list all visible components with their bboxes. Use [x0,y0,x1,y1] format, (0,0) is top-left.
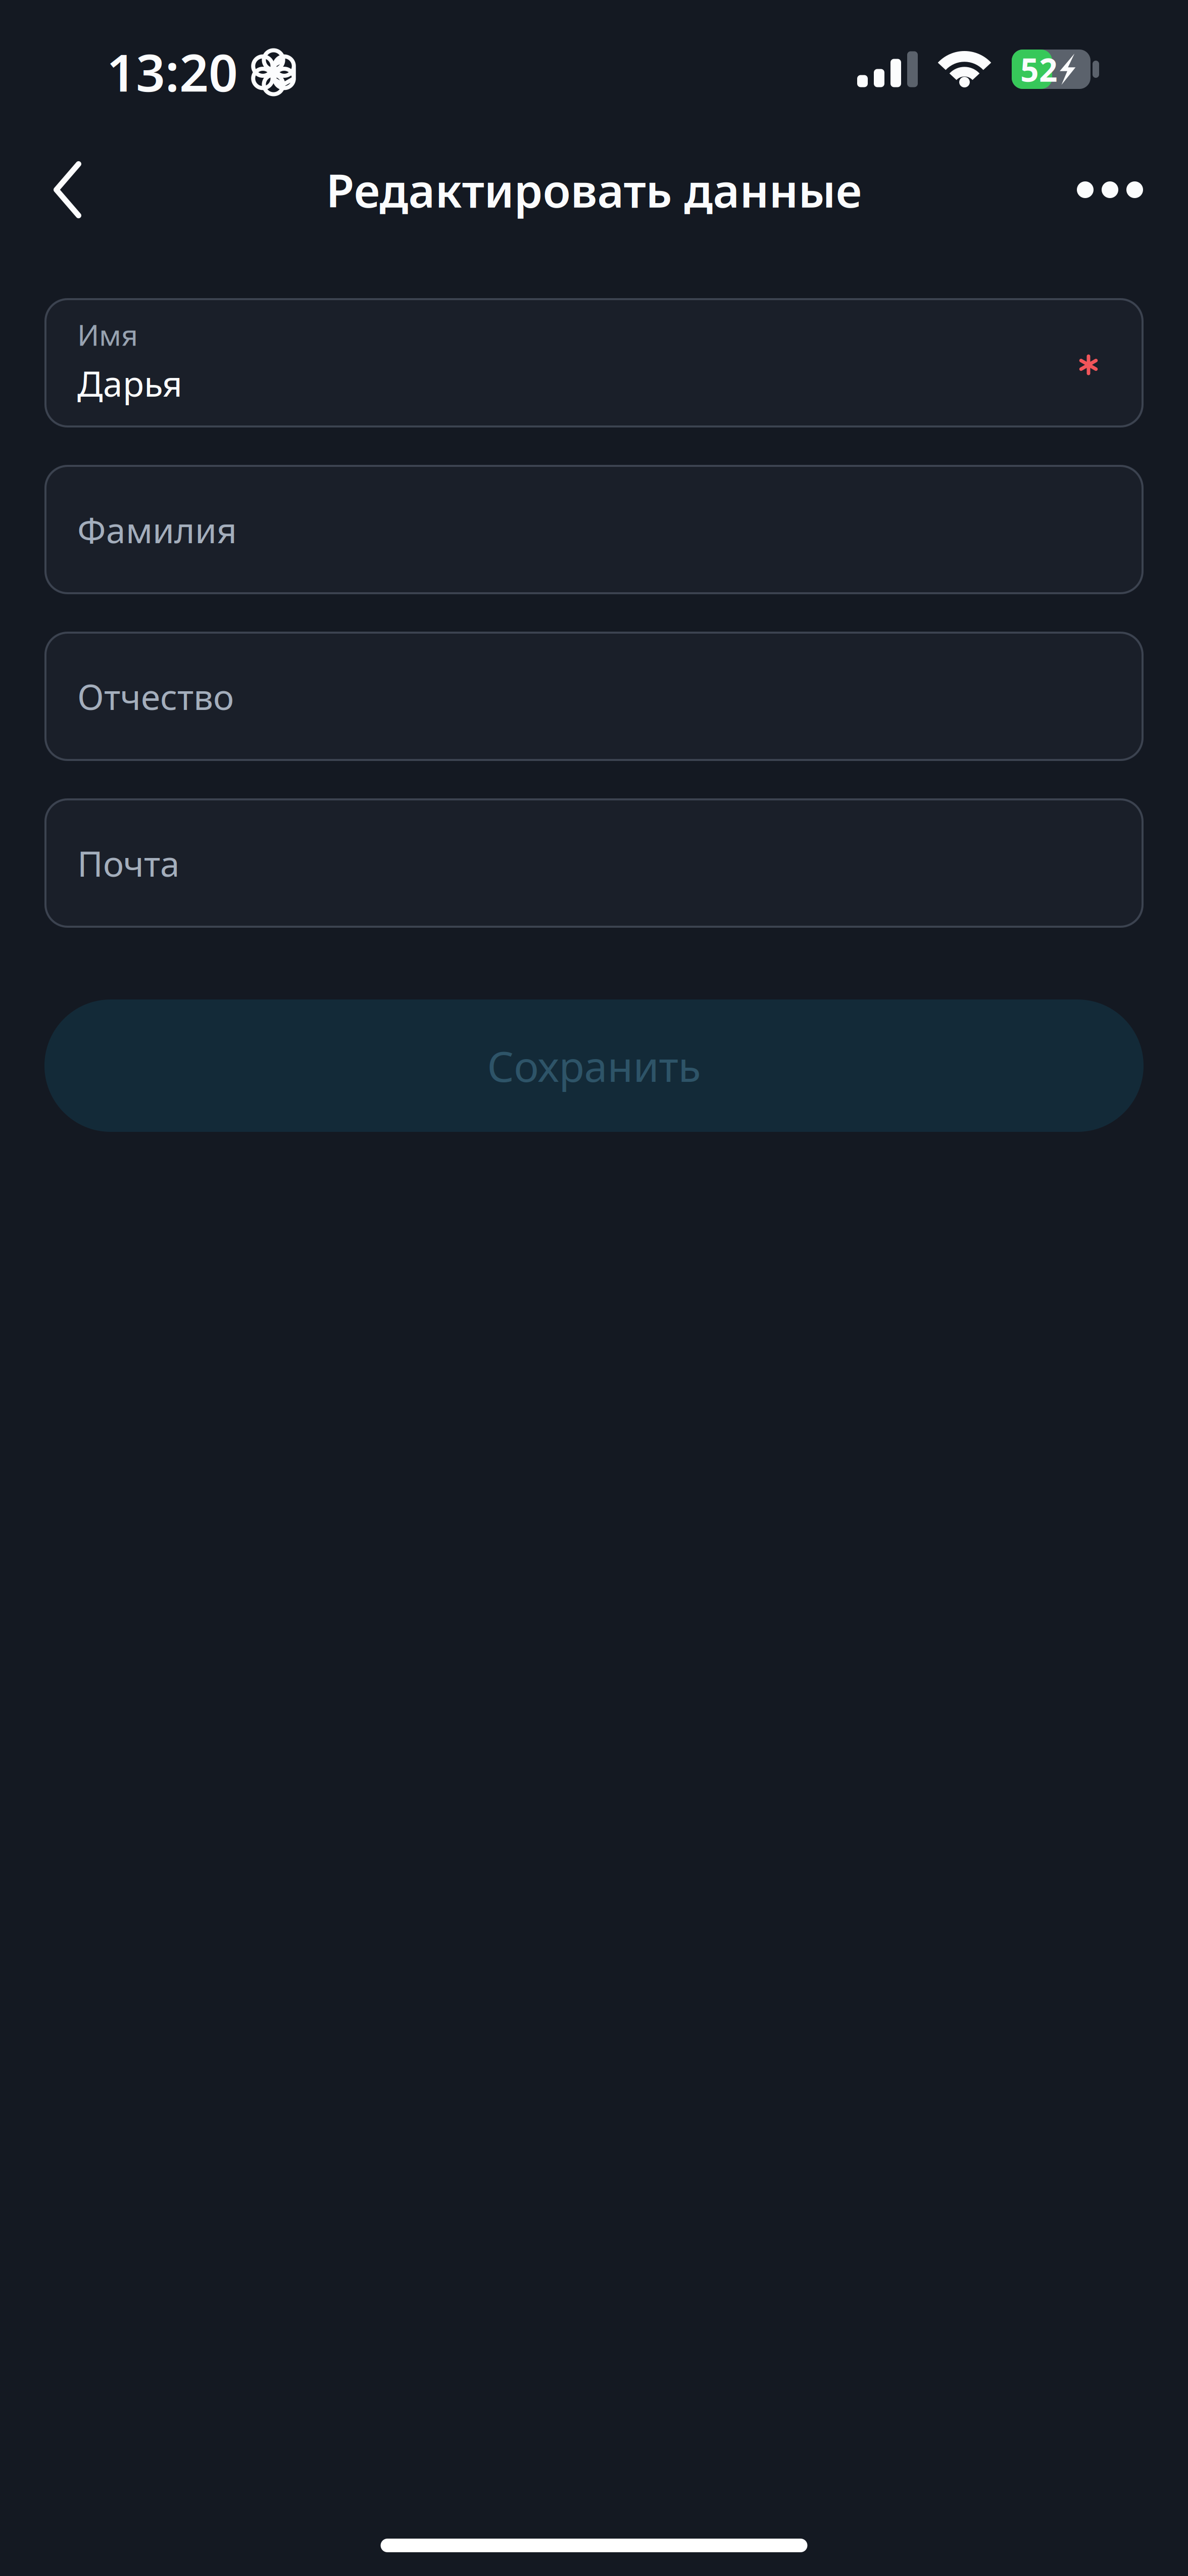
staticText: Сохранить [487,1038,701,1093]
button[interactable]: Имя [44,298,1144,427]
staticText: Дарья [77,360,182,406]
button[interactable]: Назад [21,144,114,236]
button[interactable]: Сохранить [44,999,1144,1132]
staticText: Отчество [77,673,234,720]
button[interactable]: Фамилия [44,465,1144,594]
staticText: 13:20 [107,38,238,106]
staticText: Редактировать данные [326,159,862,220]
staticText: 52 [1020,48,1058,91]
staticText: Почта [77,840,180,886]
button[interactable]: Ещё [1064,144,1156,236]
staticText: Имя [77,315,138,354]
button[interactable]: Почта [44,798,1144,928]
button[interactable]: Отчество [44,632,1144,761]
staticText: Фамилия [77,506,237,553]
